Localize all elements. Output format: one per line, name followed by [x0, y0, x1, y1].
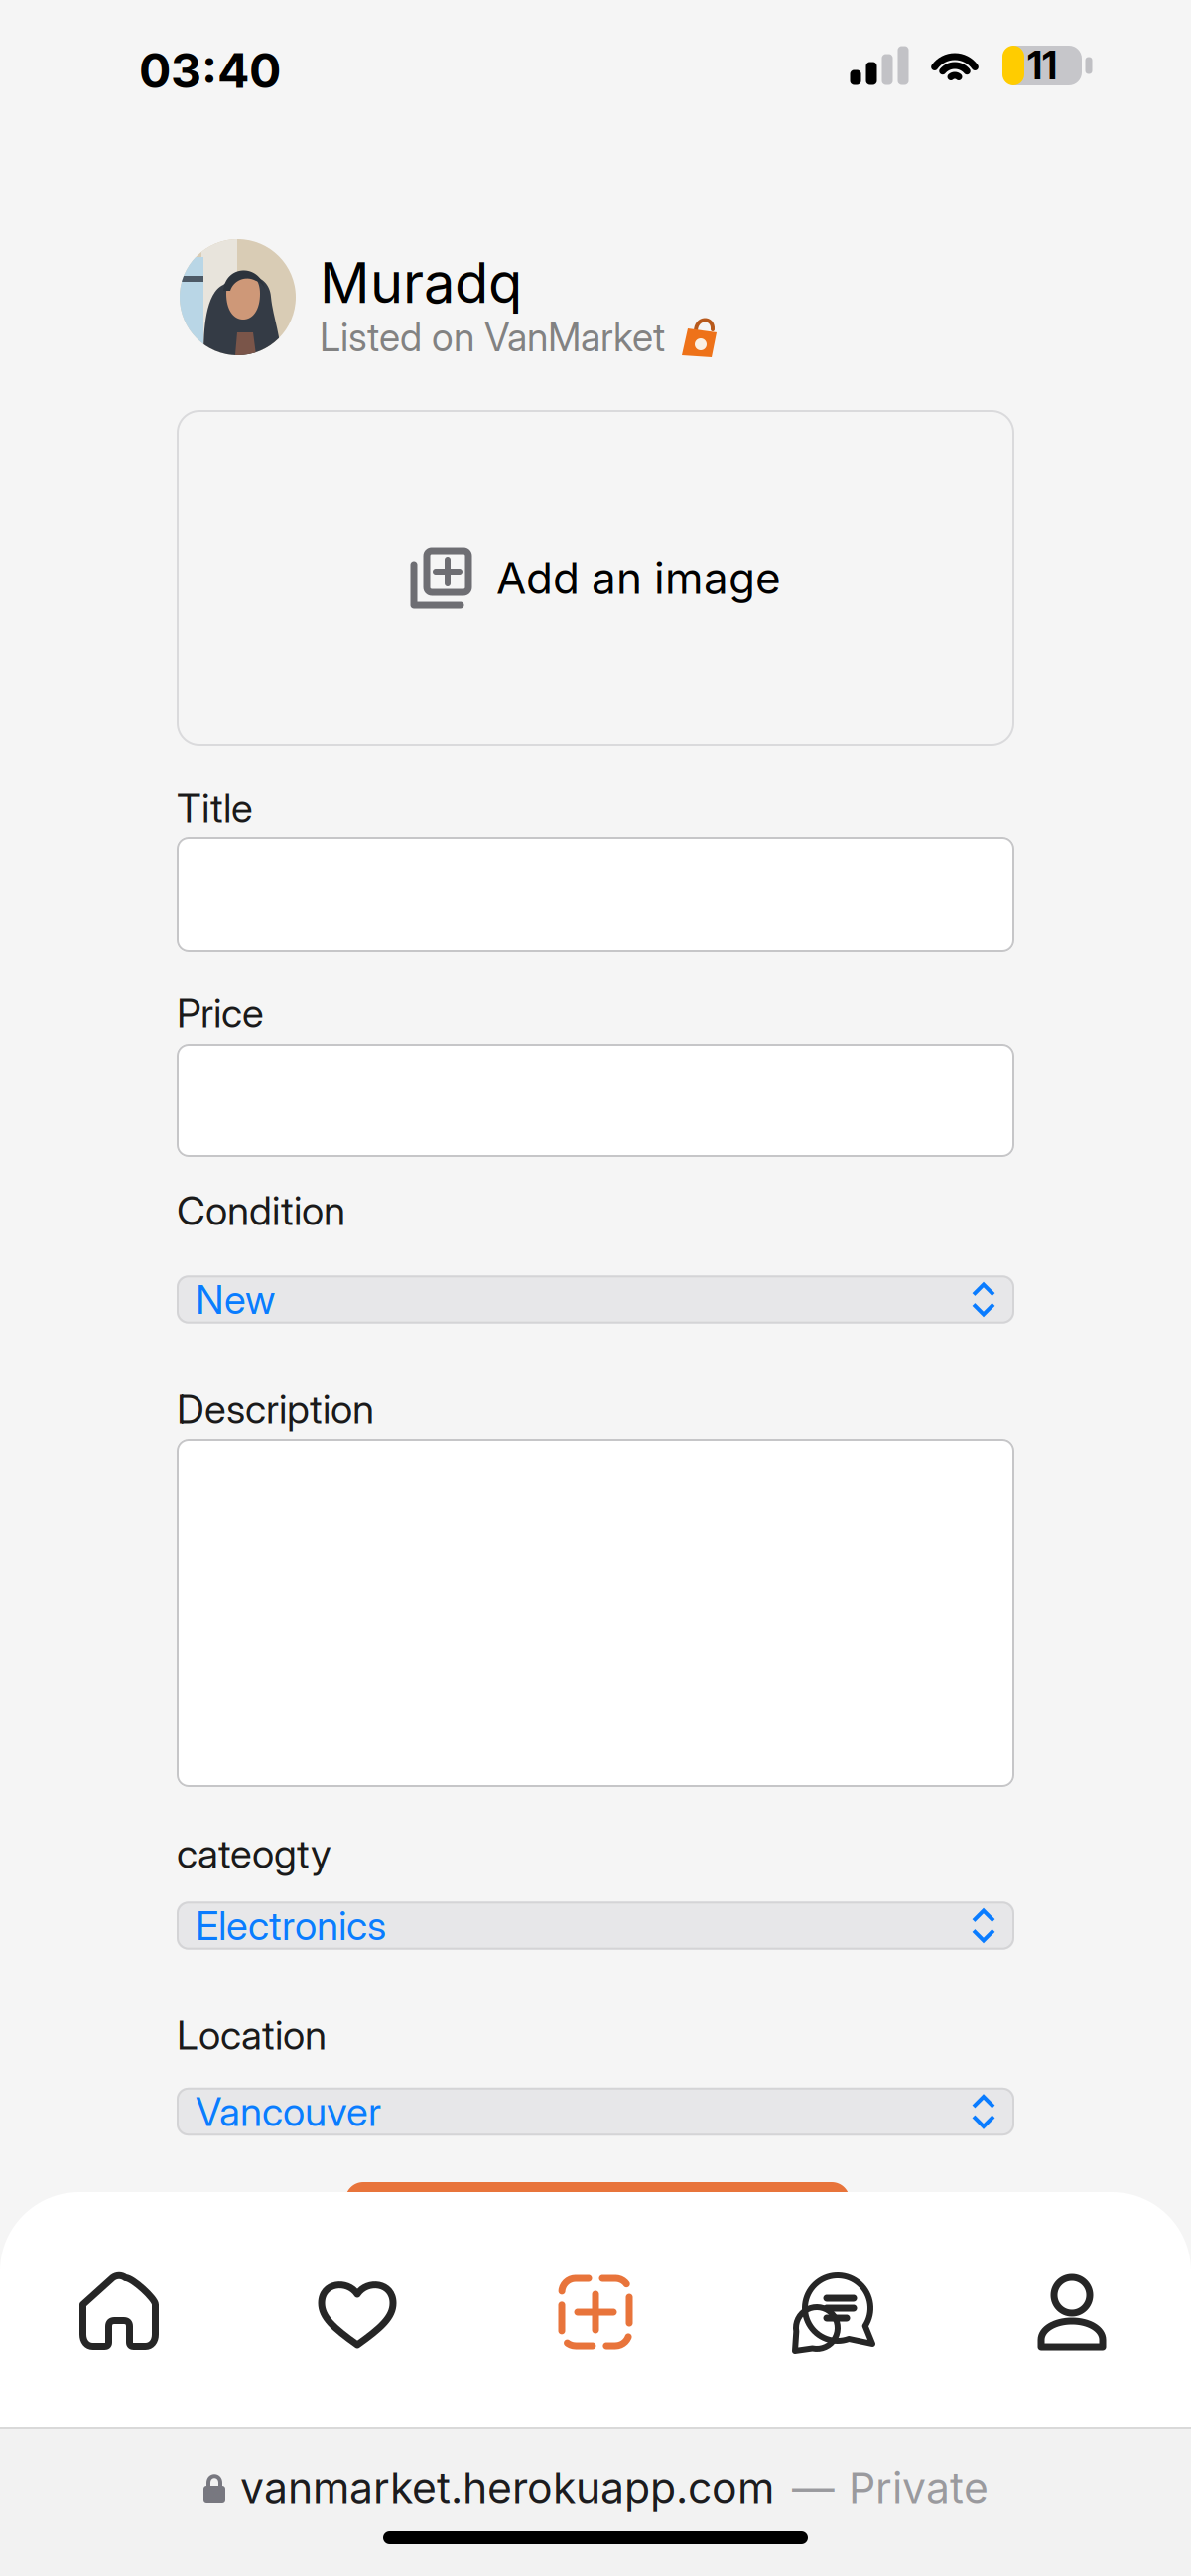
button[interactable]: Messages [715, 2238, 953, 2386]
staticText: vanmarket.herokuapp.com [240, 2462, 774, 2513]
button[interactable]: Add an image [177, 410, 1014, 746]
button[interactable] [177, 1439, 1014, 1787]
staticText: Condition [177, 1187, 345, 1235]
staticText: — [792, 2462, 835, 2513]
button[interactable] [177, 1044, 1014, 1157]
button[interactable] [345, 2182, 850, 2301]
staticText: Price [177, 989, 264, 1037]
button[interactable]: Create listing [476, 2238, 715, 2386]
button[interactable]: Electronics [177, 1902, 1014, 1950]
button[interactable]: vanmarket.herokuapp.com [0, 2462, 1191, 2513]
staticText: Title [177, 784, 253, 832]
staticText: Electronics [196, 1902, 386, 1950]
staticText: Description [177, 1385, 374, 1433]
staticText: Add an image [496, 552, 781, 604]
button[interactable] [177, 837, 1014, 952]
staticText: Listed on VanMarket [320, 314, 665, 361]
button[interactable]: Profile [953, 2238, 1191, 2386]
button[interactable]: Favorites [238, 2238, 476, 2386]
button[interactable]: Vancouver [177, 2088, 1014, 2136]
staticText: Private [849, 2462, 989, 2513]
staticText: 03:40 [139, 42, 281, 99]
staticText: Location [177, 2011, 327, 2059]
button[interactable]: New [177, 1275, 1014, 1323]
staticText: cateogty [177, 1830, 331, 1878]
button[interactable]: Home [0, 2238, 238, 2386]
staticText: New [196, 1275, 275, 1323]
staticText: 11 [1027, 42, 1057, 89]
staticText: Vancouver [196, 2088, 381, 2136]
staticText: Muradq [320, 249, 522, 316]
